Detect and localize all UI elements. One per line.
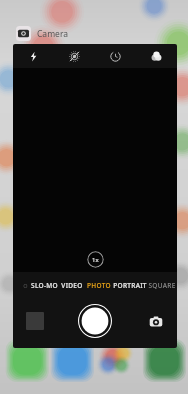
staticText: SLO-MO — [31, 281, 58, 290]
button[interactable]: SLO-MO — [30, 278, 59, 292]
button[interactable]: Shutter — [78, 304, 112, 338]
button[interactable]: Flash — [13, 44, 54, 68]
button[interactable]: Zoom one x — [87, 251, 104, 268]
button[interactable]: Filters — [136, 44, 177, 68]
button[interactable]: Timer — [95, 44, 136, 68]
button[interactable]: Switch camera — [146, 312, 165, 331]
staticText: 1x — [92, 256, 99, 264]
staticText: VIDEO — [61, 281, 83, 290]
button[interactable]: Camera app icon — [16, 26, 31, 41]
button[interactable]: PHOTO — [85, 278, 112, 292]
button[interactable]: PORTRAIT — [112, 278, 147, 292]
button[interactable]: SQUARE — [147, 278, 177, 292]
staticText: O — [23, 282, 28, 289]
button[interactable]: Live Photo off — [54, 44, 95, 68]
button[interactable]: O — [21, 278, 30, 292]
button[interactable]: VIDEO — [59, 278, 85, 292]
staticText: PORTRAIT — [113, 281, 147, 290]
staticText: SQUARE — [148, 281, 176, 290]
staticText: Camera — [37, 28, 68, 40]
staticText: PHOTO — [87, 281, 111, 290]
